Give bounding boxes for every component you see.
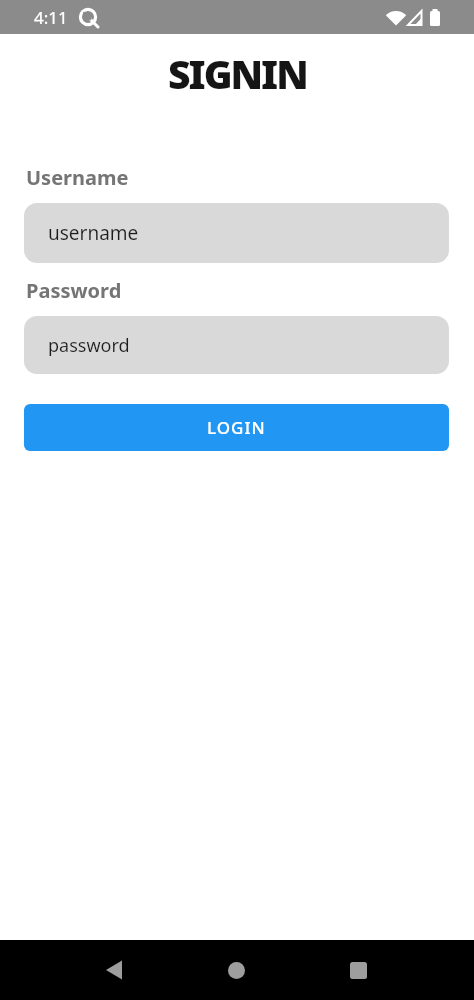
staticText: Username [26,164,129,191]
button[interactable]: LOGIN [24,404,449,451]
staticText: LOGIN [207,416,266,439]
staticText: 4:11 [34,6,68,29]
staticText: username [48,220,139,246]
button[interactable] [297,940,419,1000]
button[interactable] [175,940,297,1000]
staticText: Password [26,277,122,304]
button[interactable]: password [24,316,449,374]
staticText: password [48,333,130,358]
button[interactable] [53,940,175,1000]
staticText: SIGNIN [168,47,307,100]
button[interactable]: username [24,203,449,263]
